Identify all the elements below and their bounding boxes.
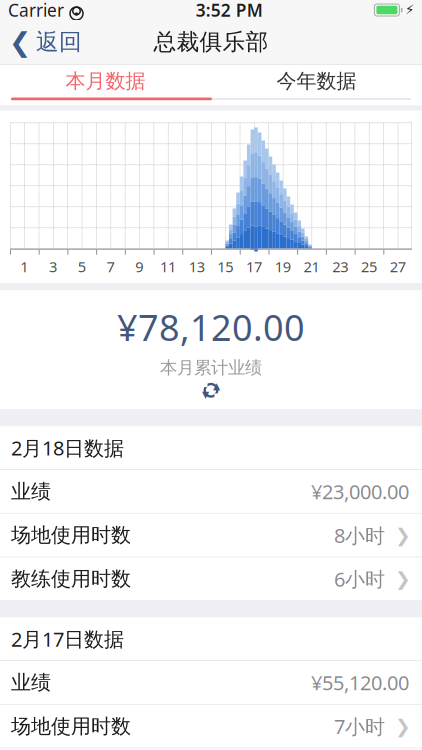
button[interactable]: 业绩: [0, 470, 422, 513]
button[interactable]: 场地使用时数: [0, 705, 422, 748]
staticText: 23: [332, 257, 348, 276]
staticText: 返回: [36, 28, 82, 56]
staticText: 5: [78, 257, 86, 276]
staticText: ❯: [395, 568, 411, 589]
staticText: 15: [217, 257, 233, 276]
staticText: ❯: [395, 716, 411, 737]
staticText: 8小时: [334, 522, 385, 548]
button[interactable]: 今年数据: [211, 64, 422, 97]
button[interactable]: 刷新: [194, 378, 228, 402]
staticText: 3: [49, 257, 57, 276]
staticText: 今年数据: [276, 69, 356, 93]
staticText: 7: [106, 257, 114, 276]
staticText: 27: [390, 257, 406, 276]
staticText: 11: [160, 257, 176, 276]
staticText: 场地使用时数: [11, 714, 131, 739]
staticText: 9: [135, 257, 143, 276]
button[interactable]: 教练使用时数: [0, 748, 422, 750]
staticText: 6小时: [334, 566, 385, 592]
staticText: ▼: [202, 389, 209, 400]
staticText: 教练使用时数: [11, 567, 131, 591]
staticText: 本月累计业绩: [160, 357, 262, 378]
button[interactable]: 业绩: [0, 661, 422, 704]
button[interactable]: 本月数据: [0, 64, 211, 97]
staticText: 7小时: [334, 713, 385, 740]
staticText: ⚡︎: [405, 2, 414, 17]
staticText: ¥78,120.00: [117, 303, 305, 351]
staticText: 业绩: [11, 479, 51, 504]
staticText: ¥23,000.00: [311, 478, 409, 505]
staticText: 场地使用时数: [11, 523, 131, 547]
staticText: 21: [303, 257, 319, 276]
staticText: 业绩: [11, 670, 51, 695]
staticText: 本月数据: [65, 69, 145, 93]
staticText: 1: [20, 257, 28, 276]
staticText: 2月18日数据: [11, 434, 124, 461]
staticText: ❯: [395, 525, 411, 546]
staticText: Carrier: [8, 0, 64, 21]
button[interactable]: ❮: [0, 20, 94, 64]
staticText: 2月17日数据: [11, 626, 124, 652]
staticText: 3:52 PM: [196, 0, 263, 21]
button[interactable]: 教练使用时数: [0, 557, 422, 600]
staticText: ❮: [9, 27, 31, 57]
staticText: 25: [361, 257, 377, 276]
staticText: 19: [275, 257, 291, 276]
staticText: ¥55,120.00: [311, 669, 409, 696]
staticText: 17: [246, 257, 262, 276]
staticText: 13: [189, 257, 205, 276]
button[interactable]: 场地使用时数: [0, 514, 422, 557]
staticText: 总裁俱乐部: [153, 28, 268, 56]
staticText: ▲: [213, 381, 220, 391]
